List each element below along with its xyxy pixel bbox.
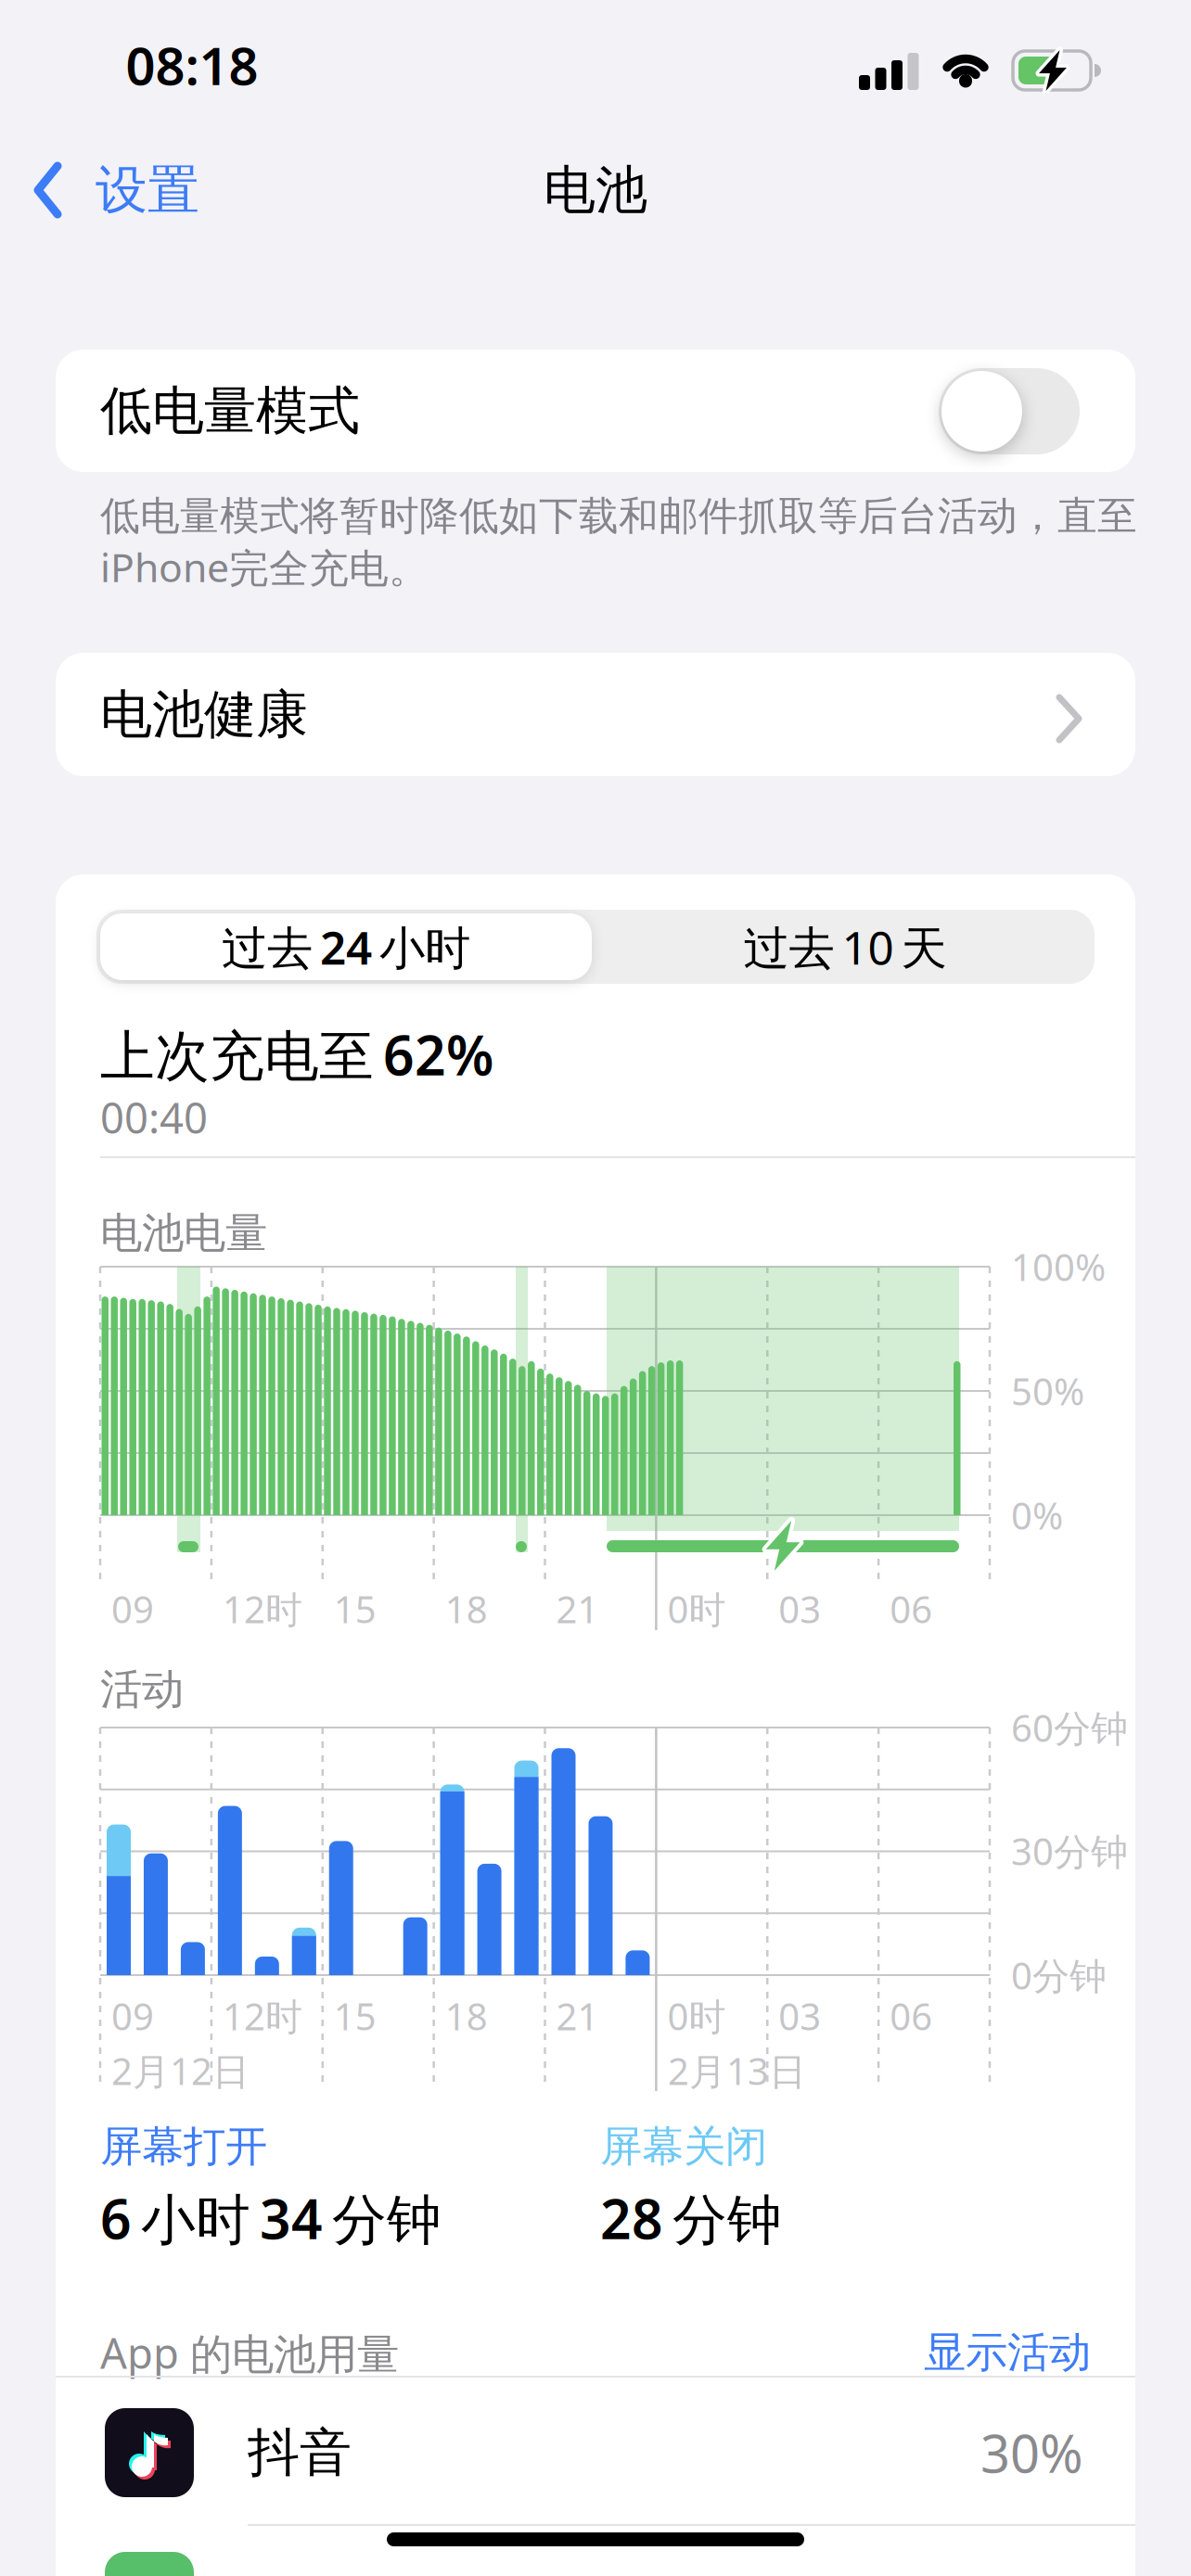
staticText: 电池健康: [100, 683, 308, 746]
staticText: 0分钟: [1011, 1950, 1107, 2000]
staticText: 电池电量: [100, 1208, 267, 1259]
staticText: 03: [778, 1991, 821, 2040]
staticText: 显示活动: [924, 2327, 1091, 2378]
staticText: 21: [556, 1991, 599, 2040]
staticText: 电池: [544, 158, 647, 222]
staticText: 过去 10 天: [743, 916, 947, 977]
staticText: 06: [890, 1584, 932, 1633]
staticText: 09: [111, 1584, 154, 1633]
staticText: 屏幕关闭: [600, 2121, 767, 2173]
button[interactable]: 过去 10 天: [595, 910, 1095, 984]
staticText: 0%: [1011, 1491, 1063, 1540]
staticText: 100%: [1011, 1242, 1106, 1291]
staticText: 上次充电至 62%: [100, 1018, 493, 1090]
staticText: 2月13日: [668, 2046, 806, 2095]
staticText: 18: [445, 1991, 488, 2040]
staticText: 2月12日: [111, 2046, 250, 2095]
staticText: 15: [334, 1584, 376, 1633]
staticText: 18: [445, 1584, 488, 1633]
button[interactable]: 低电量模式: [939, 368, 1080, 454]
staticText: 低电量模式: [100, 379, 360, 443]
staticText: 低电量模式将暂时降低如下载和邮件抓取等后台活动，直至 iPhone完全充电。: [100, 492, 1137, 593]
staticText: 15: [334, 1991, 376, 2040]
staticText: 28 分钟: [600, 2182, 782, 2254]
staticText: 抖音: [248, 2421, 352, 2485]
staticText: 21: [556, 1584, 599, 1633]
staticText: 0时: [667, 1584, 726, 1633]
staticText: 06: [890, 1991, 932, 2040]
staticText: 活动: [100, 1664, 184, 1715]
staticText: 设置: [96, 158, 199, 222]
staticText: App 的电池用量: [100, 2325, 399, 2381]
staticText: 12时: [223, 1584, 302, 1633]
staticText: 08:18: [126, 30, 258, 99]
button[interactable]: 抖音: [56, 2390, 1135, 2516]
staticText: 00:40: [100, 1089, 208, 1145]
staticText: 屏幕打开: [100, 2121, 267, 2173]
button[interactable]: 显示活动: [850, 2327, 1091, 2378]
staticText: 50%: [1011, 1366, 1084, 1416]
staticText: 09: [111, 1991, 154, 2040]
button[interactable]: 电池健康: [56, 653, 1135, 776]
staticText: 30%: [980, 2418, 1083, 2487]
staticText: 6 小时 34 分钟: [100, 2182, 442, 2254]
staticText: 60分钟: [1011, 1703, 1128, 1752]
staticText: 0时: [667, 1991, 726, 2040]
staticText: 03: [778, 1584, 821, 1633]
button[interactable]: 过去 24 小时: [96, 910, 595, 984]
staticText: 30分钟: [1011, 1826, 1128, 1875]
staticText: 过去 24 小时: [222, 916, 470, 977]
staticText: 12时: [223, 1991, 302, 2040]
button[interactable]: 返回设置: [33, 159, 312, 221]
